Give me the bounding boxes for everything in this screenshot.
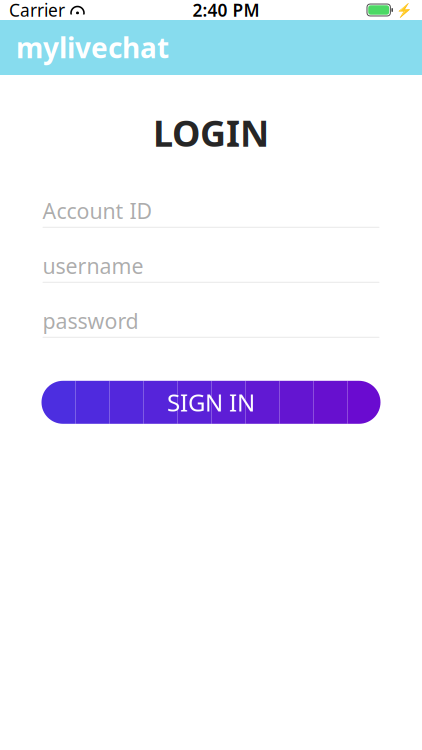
- staticText: username: [42, 252, 143, 280]
- staticText: 2:40 PM: [192, 0, 259, 21]
- staticText: Carrier: [9, 0, 65, 21]
- staticText: SIGN IN: [167, 386, 255, 418]
- staticText: LOGIN: [153, 109, 269, 157]
- button[interactable]: SIGN IN: [41, 381, 380, 424]
- staticText: mylivechat: [16, 29, 169, 66]
- staticText: Account ID: [42, 197, 152, 225]
- staticText: password: [42, 307, 138, 335]
- staticText: ⚡: [396, 2, 413, 18]
